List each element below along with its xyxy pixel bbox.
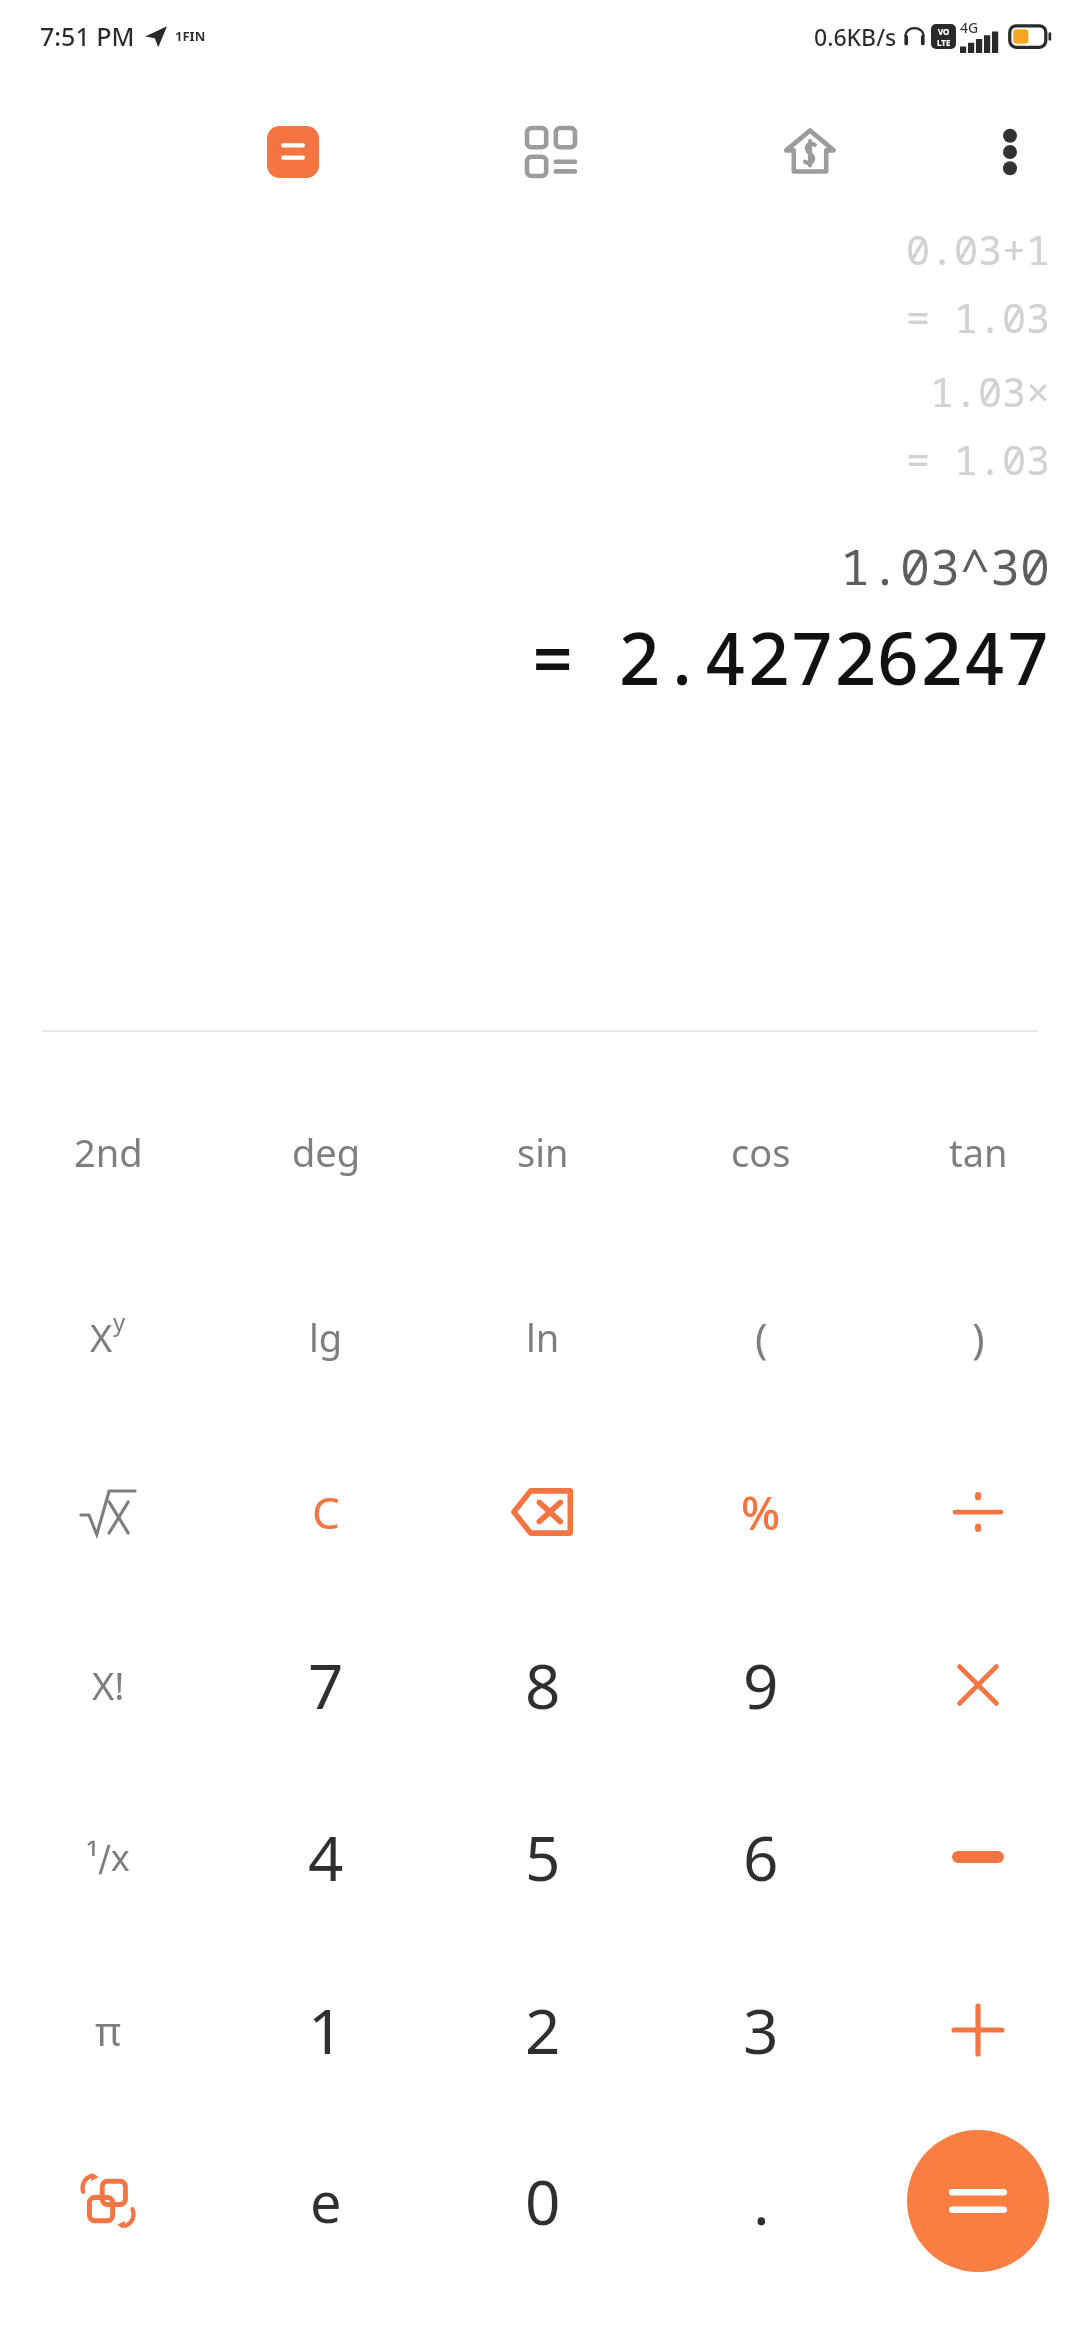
button[interactable]: More options	[968, 110, 1052, 194]
button[interactable]: 3	[686, 1955, 836, 2105]
button[interactable]: π	[33, 1955, 183, 2105]
staticText: 1.03×	[930, 364, 1050, 418]
button[interactable]: 5	[468, 1782, 618, 1932]
button[interactable]: 7	[251, 1610, 401, 1760]
staticText: X	[90, 1311, 113, 1363]
staticText: = 1.03	[906, 290, 1050, 344]
button[interactable]: (	[686, 1262, 836, 1412]
button[interactable]: deg	[251, 1077, 401, 1227]
button[interactable]: C	[251, 1437, 401, 1587]
staticText: X!	[92, 1659, 125, 1711]
staticText: = 1.03	[906, 432, 1050, 486]
staticText: .	[753, 2159, 770, 2243]
button[interactable]: 9	[686, 1610, 836, 1760]
staticText: (	[755, 1309, 768, 1366]
staticText: y	[113, 1305, 126, 1338]
staticText: 0.03+1	[906, 222, 1050, 276]
staticText: ¹∕x	[86, 1833, 130, 1882]
button[interactable]: .	[686, 2126, 836, 2276]
staticText: %	[741, 1481, 781, 1544]
button[interactable]: 2	[468, 1955, 618, 2105]
staticText: 2	[525, 1988, 561, 2072]
button[interactable]: x to the power y	[33, 1262, 183, 1412]
button[interactable]: Calculator	[251, 110, 335, 194]
staticText: deg	[292, 1126, 361, 1178]
button[interactable]: )	[903, 1262, 1053, 1412]
button[interactable]: %	[686, 1437, 836, 1587]
staticText: C	[312, 1482, 340, 1542]
staticText: sin	[517, 1126, 569, 1178]
staticText: LTE	[937, 37, 951, 48]
staticText: tan	[949, 1126, 1008, 1178]
button[interactable]: Multiply	[903, 1610, 1053, 1760]
staticText: 5	[525, 1815, 561, 1899]
staticText: 8	[525, 1643, 561, 1727]
button[interactable]: 4	[251, 1782, 401, 1932]
button[interactable]: Square root	[33, 1437, 183, 1587]
staticText: e	[310, 2163, 342, 2239]
staticText: VO	[938, 26, 950, 37]
staticText: 2nd	[74, 1126, 143, 1178]
button[interactable]: 1	[251, 1955, 401, 2105]
button[interactable]: sin	[468, 1077, 618, 1227]
button[interactable]: 0	[468, 2126, 618, 2276]
button[interactable]: cos	[686, 1077, 836, 1227]
button[interactable]: X!	[33, 1610, 183, 1760]
staticText: 3	[743, 1988, 779, 2072]
button[interactable]: one over x	[33, 1782, 183, 1932]
button[interactable]: e	[251, 2126, 401, 2276]
staticText: 9	[743, 1643, 779, 1727]
button[interactable]: ln	[468, 1262, 618, 1412]
staticText: 1.03^30	[840, 532, 1050, 600]
staticText: cos	[731, 1126, 791, 1178]
staticText: )	[972, 1309, 985, 1366]
staticText: lg	[309, 1311, 343, 1363]
button[interactable]: Converters	[509, 110, 593, 194]
button[interactable]: lg	[251, 1262, 401, 1412]
button[interactable]: Plus	[903, 1955, 1053, 2105]
staticText: 4G	[960, 18, 979, 37]
staticText: 0	[525, 2159, 561, 2243]
button[interactable]: Loan calculator	[768, 110, 852, 194]
button[interactable]: 6	[686, 1782, 836, 1932]
staticText: ln	[526, 1311, 560, 1363]
staticText: 6	[743, 1815, 779, 1899]
button[interactable]: Equals	[907, 2130, 1049, 2272]
button[interactable]: Minus	[903, 1782, 1053, 1932]
button[interactable]: Unit converter	[33, 2126, 183, 2276]
staticText: 4	[308, 1815, 344, 1899]
button[interactable]: Backspace	[468, 1437, 618, 1587]
staticText: 1	[308, 1988, 344, 2072]
staticText: 0.6KB/s	[814, 21, 897, 52]
staticText: 1FIN	[175, 27, 206, 45]
staticText: = 2.42726247	[531, 608, 1050, 706]
staticText: π	[95, 2003, 122, 2057]
button[interactable]: 2nd	[33, 1077, 183, 1227]
button[interactable]: Divide	[903, 1437, 1053, 1587]
button[interactable]: tan	[903, 1077, 1053, 1227]
staticText: 7:51 PM	[40, 19, 135, 53]
staticText: 7	[308, 1643, 344, 1727]
button[interactable]: 8	[468, 1610, 618, 1760]
